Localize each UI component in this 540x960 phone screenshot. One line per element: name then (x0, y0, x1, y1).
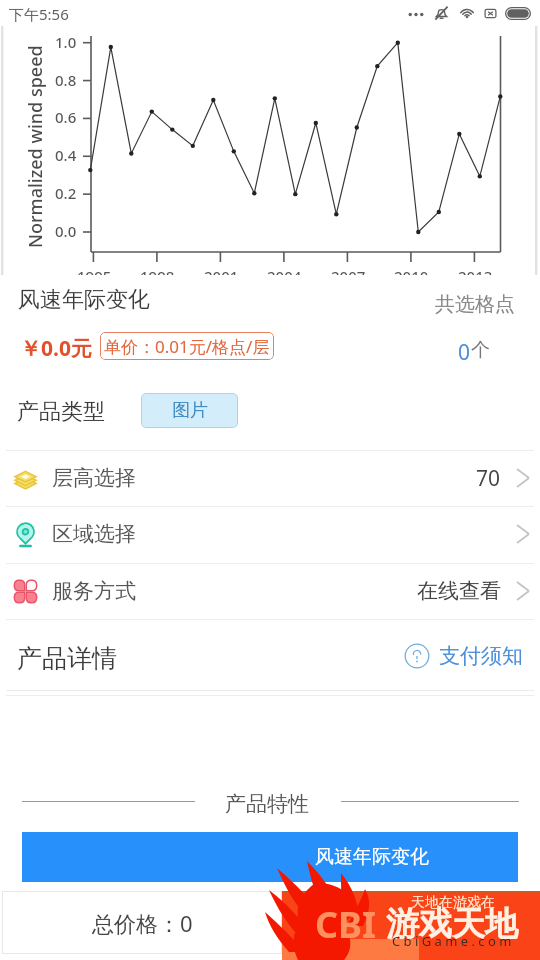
staticText: 产品特性 (225, 791, 309, 817)
staticText: 1995 (77, 266, 112, 275)
staticText: 1998 (140, 266, 175, 275)
staticText: CBI (315, 900, 377, 949)
button[interactable]: 支付须知 (404, 643, 523, 669)
button[interactable]: 图片 (141, 393, 238, 428)
staticText: 产品类型 (17, 398, 105, 426)
staticText: 2004 (267, 266, 302, 275)
staticText: 0.4 (55, 145, 77, 165)
staticText: 0.8 (55, 70, 77, 90)
button[interactable]: 层高选择 (0, 450, 540, 506)
staticText: 2007 (331, 266, 366, 275)
staticText: 产品详情 (17, 643, 117, 674)
staticText: C b i G a m e . c o m (392, 932, 512, 950)
staticText: 区域选择 (52, 521, 136, 547)
staticText: 2010 (394, 266, 429, 275)
staticText: 70 (476, 464, 501, 493)
staticText: 游戏天地 (386, 903, 518, 945)
staticText: 天地在游戏在 (411, 894, 495, 912)
staticText: 2013 (458, 266, 493, 275)
button[interactable]: 总价格：0 (2, 891, 282, 954)
staticText: 单价：0.01元/格点/层 (104, 335, 270, 358)
staticText: 共选格点 (435, 292, 515, 317)
staticText: 0.2 (55, 183, 77, 203)
staticText: 层高选择 (52, 465, 136, 491)
staticText: 1.0 (55, 32, 77, 52)
staticText: 服务方式 (52, 578, 136, 604)
staticText: 在线查看 (417, 578, 501, 604)
staticText: 支付须知 (439, 643, 523, 669)
button[interactable]: 立即购买 (282, 891, 540, 960)
button[interactable]: 风速年际变化 (22, 832, 518, 882)
staticText: 个 (471, 338, 490, 362)
staticText: Normalized wind speed (23, 45, 48, 248)
staticText: 下午5:56 (9, 4, 69, 24)
button[interactable]: 区域选择 (0, 506, 540, 562)
staticText: 2001 (204, 266, 239, 275)
staticText: 0.6 (55, 107, 77, 127)
staticText: 0.0 (55, 221, 77, 241)
staticText: 立即购买 (367, 912, 455, 940)
staticText: 风速年际变化 (18, 286, 150, 314)
staticText: 0 (458, 338, 471, 367)
button[interactable]: 服务方式 (0, 563, 540, 619)
staticText: 总价格：0 (92, 908, 193, 938)
staticText: 图片 (172, 399, 208, 422)
staticText: 风速年际变化 (315, 845, 429, 869)
staticText: ￥0.0元 (20, 334, 92, 363)
